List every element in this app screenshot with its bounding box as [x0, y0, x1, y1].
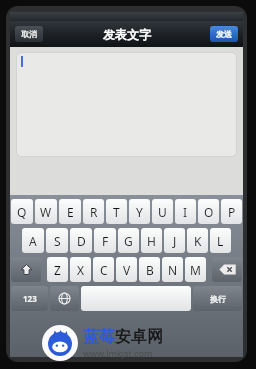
staticText: O	[204, 204, 214, 220]
staticText: 123	[23, 293, 37, 304]
button[interactable]: Space	[81, 286, 191, 311]
staticText: 发表文字	[103, 27, 151, 42]
staticText: F	[102, 233, 109, 249]
button[interactable]: A	[22, 228, 44, 253]
button[interactable]: L	[210, 228, 231, 253]
staticText: P	[228, 204, 236, 220]
button[interactable]: B	[139, 257, 160, 282]
staticText: V	[123, 262, 131, 278]
button[interactable]: 发送	[210, 26, 238, 42]
staticText: R	[90, 204, 98, 220]
button[interactable]: G	[118, 228, 139, 253]
button[interactable]: C	[93, 257, 114, 282]
staticText: www.lmkjst.com	[83, 347, 153, 359]
button[interactable]: Switch language	[50, 286, 79, 311]
staticText: T	[113, 204, 120, 220]
button[interactable]: R	[83, 199, 104, 224]
button[interactable]: Z	[47, 257, 68, 282]
button[interactable]: K	[187, 228, 208, 253]
staticText: N	[168, 262, 178, 278]
staticText: 换行	[210, 294, 226, 304]
staticText: U	[158, 204, 167, 220]
staticText: K	[194, 233, 202, 249]
staticText: Z	[54, 262, 61, 278]
staticText: A	[29, 233, 37, 249]
button[interactable]: N	[162, 257, 183, 282]
button[interactable]: S	[46, 228, 68, 253]
button[interactable]: Y	[129, 199, 150, 224]
staticText: S	[54, 233, 61, 249]
button[interactable]: Shift	[11, 257, 41, 282]
staticText: W	[40, 204, 52, 220]
button[interactable]: X	[70, 257, 91, 282]
button[interactable]: U	[152, 199, 173, 224]
button[interactable]: O	[198, 199, 219, 224]
staticText: G	[124, 233, 133, 249]
staticText: 发送	[216, 29, 232, 39]
staticText: 取消	[21, 29, 37, 39]
staticText: J	[173, 233, 177, 249]
button[interactable]: D	[70, 228, 92, 253]
staticText: H	[147, 233, 156, 249]
staticText: Y	[136, 204, 143, 220]
button[interactable]: 取消	[15, 26, 43, 42]
button[interactable]: I	[175, 199, 196, 224]
button[interactable]: J	[164, 228, 185, 253]
staticText: E	[67, 204, 74, 220]
button[interactable]: E	[59, 199, 81, 224]
staticText: Q	[17, 204, 27, 220]
staticText: 安卓网	[115, 327, 163, 347]
staticText: M	[190, 262, 201, 278]
staticText: 蓝莓	[83, 327, 115, 347]
staticText: X	[77, 262, 85, 278]
staticText: I	[183, 204, 188, 220]
button[interactable]: P	[221, 199, 242, 224]
staticText: D	[77, 233, 86, 249]
button[interactable]: H	[141, 228, 162, 253]
staticText: C	[100, 262, 108, 278]
button[interactable]: W	[35, 199, 57, 224]
button[interactable]: F	[94, 228, 116, 253]
button[interactable]: M	[185, 257, 206, 282]
button[interactable]: 换行	[193, 286, 242, 311]
button[interactable]	[16, 52, 237, 157]
staticText: L	[217, 233, 224, 249]
button[interactable]: Q	[11, 199, 33, 224]
staticText: B	[146, 262, 154, 278]
button[interactable]: Backspace	[212, 257, 242, 282]
button[interactable]: 123	[11, 286, 48, 311]
button[interactable]: V	[116, 257, 137, 282]
button[interactable]: T	[106, 199, 127, 224]
